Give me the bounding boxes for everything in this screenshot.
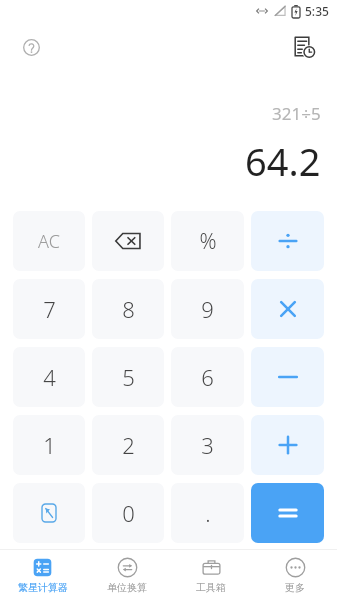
staticText: 5 — [122, 362, 135, 392]
staticText: 2 — [122, 430, 135, 460]
button[interactable]: . — [171, 483, 244, 543]
button[interactable]: 8 — [92, 279, 164, 339]
staticText: 4 — [43, 362, 56, 392]
staticText: 更多 — [285, 581, 305, 594]
button[interactable]: AC — [13, 211, 85, 271]
button[interactable]: Equals — [251, 483, 324, 543]
button[interactable]: 7 — [13, 279, 85, 339]
staticText: 321÷5 — [272, 102, 321, 125]
staticText: 1 — [43, 430, 56, 460]
staticText: 64.2 — [245, 135, 321, 187]
button[interactable]: 0 — [92, 483, 164, 543]
staticText: 7 — [43, 294, 56, 324]
staticText: 9 — [201, 294, 214, 324]
button[interactable]: 更多 — [253, 553, 337, 598]
button[interactable]: Expand — [13, 483, 85, 543]
button[interactable]: % — [171, 211, 244, 271]
button[interactable]: 4 — [13, 347, 85, 407]
button[interactable]: Delete — [92, 211, 164, 271]
button[interactable]: Divide — [251, 211, 324, 271]
button[interactable]: Help — [14, 30, 48, 64]
staticText: AC — [38, 229, 60, 254]
button[interactable]: 单位换算 — [85, 553, 169, 598]
button[interactable]: 3 — [171, 415, 244, 475]
button[interactable]: 9 — [171, 279, 244, 339]
button[interactable]: History — [285, 28, 323, 66]
button[interactable]: Add — [251, 415, 324, 475]
button[interactable]: 繁星计算器 — [0, 553, 85, 598]
staticText: 8 — [122, 294, 135, 324]
staticText: 繁星计算器 — [18, 581, 68, 594]
button[interactable]: 5 — [92, 347, 164, 407]
staticText: % — [199, 227, 217, 256]
staticText: 5:35 — [305, 3, 329, 19]
staticText: . — [205, 498, 211, 528]
staticText: 单位换算 — [107, 581, 147, 594]
button[interactable]: 2 — [92, 415, 164, 475]
staticText: 工具箱 — [196, 581, 226, 594]
button[interactable]: Subtract — [251, 347, 324, 407]
button[interactable]: 1 — [13, 415, 85, 475]
staticText: 6 — [201, 362, 214, 392]
button[interactable]: Multiply — [251, 279, 324, 339]
button[interactable]: 工具箱 — [169, 553, 253, 598]
staticText: 3 — [201, 430, 214, 460]
button[interactable]: 6 — [171, 347, 244, 407]
staticText: 0 — [122, 498, 135, 528]
